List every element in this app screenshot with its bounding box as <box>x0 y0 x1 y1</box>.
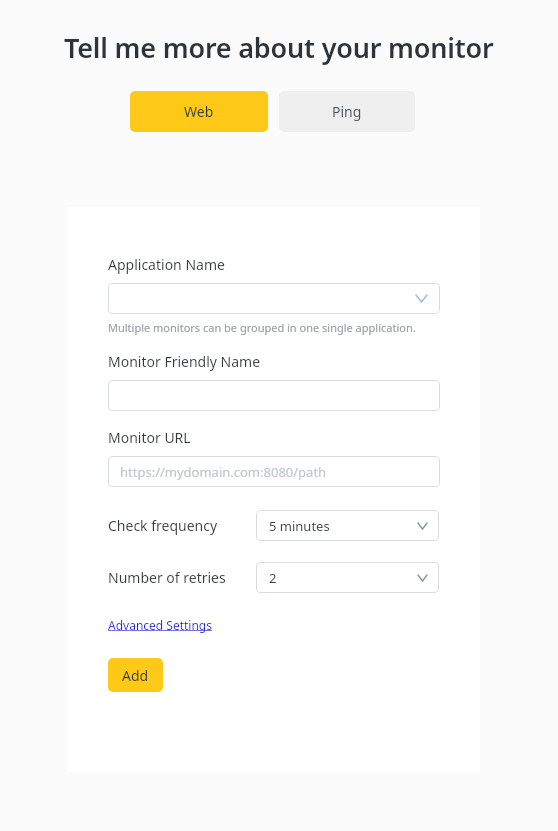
staticText: Ping <box>332 102 362 121</box>
button[interactable]: Add <box>108 658 163 692</box>
button[interactable]: Monitor URL <box>108 456 440 487</box>
staticText: Multiple monitors can be grouped in one … <box>108 320 416 335</box>
button[interactable]: Check frequency dropdown <box>256 510 439 541</box>
staticText: Monitor URL <box>108 428 191 447</box>
button[interactable]: Web <box>130 91 268 132</box>
staticText: Advanced Settings <box>108 617 212 633</box>
staticText: Application Name <box>108 255 225 274</box>
button[interactable]: Application Name dropdown <box>108 283 440 314</box>
staticText: Monitor Friendly Name <box>108 352 261 371</box>
staticText: 5 minutes <box>269 517 330 535</box>
staticText: https://mydomain.com:8080/path <box>120 463 327 481</box>
button[interactable]: Monitor Friendly Name <box>108 380 440 411</box>
staticText: Number of retries <box>108 568 226 587</box>
staticText: Tell me more about your monitor <box>64 29 494 66</box>
button[interactable]: Number of retries dropdown <box>256 562 439 593</box>
button[interactable]: Advanced Settings <box>108 617 212 633</box>
staticText: Check frequency <box>108 516 218 535</box>
staticText: Add <box>122 666 149 685</box>
staticText: Web <box>184 102 214 121</box>
staticText: 2 <box>269 569 277 587</box>
button[interactable]: Ping <box>279 91 415 132</box>
